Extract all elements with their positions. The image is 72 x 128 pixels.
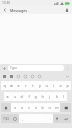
button[interactable]: Add attachment xyxy=(2,66,7,71)
staticText: n xyxy=(48,105,51,110)
button[interactable]: u xyxy=(43,81,50,90)
button[interactable]: ?123 xyxy=(1,114,11,123)
staticText: u xyxy=(45,83,48,88)
button[interactable]: g xyxy=(32,92,39,101)
button[interactable]: x xyxy=(18,103,25,112)
button[interactable]: Search xyxy=(37,74,42,79)
button[interactable]: Voice input xyxy=(53,114,61,123)
button[interactable]: c xyxy=(25,103,32,112)
staticText: q xyxy=(3,83,6,88)
button[interactable]: , xyxy=(19,114,25,123)
staticText: i xyxy=(53,83,54,88)
staticText: c xyxy=(28,105,30,110)
staticText: h xyxy=(41,94,44,99)
button[interactable]: Enter xyxy=(61,114,71,123)
button[interactable]: b xyxy=(39,103,46,112)
staticText: v xyxy=(35,105,37,110)
button[interactable]: Collapse xyxy=(65,74,70,79)
staticText: m xyxy=(55,105,59,110)
staticText: x xyxy=(21,105,23,110)
button[interactable]: Settings xyxy=(23,74,28,79)
button[interactable]: v xyxy=(32,103,39,112)
button[interactable]: q xyxy=(1,81,8,90)
staticText: s xyxy=(14,94,16,99)
button[interactable]: Back xyxy=(2,7,8,13)
button[interactable]: y xyxy=(36,81,43,90)
staticText: Type xyxy=(10,66,18,70)
button[interactable]: Emoji xyxy=(11,114,19,123)
button[interactable]: h xyxy=(39,92,46,101)
button[interactable]: o xyxy=(57,81,64,90)
staticText: 10:30 xyxy=(2,1,11,5)
staticText: k xyxy=(56,94,58,99)
button[interactable]: i xyxy=(50,81,57,90)
staticText: . xyxy=(50,116,51,121)
button[interactable]: f xyxy=(25,92,32,101)
staticText: t xyxy=(32,83,34,88)
staticText: w xyxy=(10,83,13,88)
button[interactable]: j xyxy=(46,92,53,101)
staticText: a xyxy=(6,94,9,99)
staticText: g xyxy=(34,94,37,99)
button[interactable]: z xyxy=(11,103,18,112)
staticText: j xyxy=(49,94,50,99)
button[interactable]: More options xyxy=(64,7,70,13)
button[interactable]: Backspace xyxy=(60,103,71,112)
staticText: o xyxy=(59,83,62,88)
button[interactable]: t xyxy=(29,81,36,90)
button[interactable]: . xyxy=(47,114,53,123)
button[interactable]: p xyxy=(64,81,71,90)
button[interactable]: k xyxy=(53,92,60,101)
staticText: f xyxy=(28,94,30,99)
staticText: y xyxy=(39,83,41,88)
button[interactable]: l xyxy=(60,92,67,101)
button[interactable]: e xyxy=(15,81,22,90)
button[interactable]: Send xyxy=(65,66,70,71)
button[interactable]: m xyxy=(53,103,60,112)
staticText: l xyxy=(63,94,64,99)
staticText: Messages xyxy=(10,8,27,13)
button[interactable]: Sticker xyxy=(9,74,14,79)
button[interactable]: w xyxy=(8,81,15,90)
staticText: e xyxy=(17,83,20,88)
button[interactable]: Type xyxy=(8,65,64,71)
staticText: d xyxy=(20,94,23,99)
button[interactable]: Theme xyxy=(30,74,35,79)
staticText: z xyxy=(14,105,16,110)
staticText: , xyxy=(22,116,23,121)
button[interactable]: n xyxy=(46,103,53,112)
button[interactable]: Shift xyxy=(1,103,11,112)
staticText: b xyxy=(41,105,44,110)
staticText: p xyxy=(66,83,69,88)
staticText: r xyxy=(25,83,27,88)
button[interactable]: Keyboard xyxy=(2,74,7,79)
button[interactable]: a xyxy=(4,92,11,101)
button[interactable]: Emoji xyxy=(16,74,21,79)
button[interactable]: d xyxy=(18,92,25,101)
staticText: ?123 xyxy=(3,117,9,121)
button[interactable]: s xyxy=(11,92,18,101)
button[interactable]: r xyxy=(22,81,29,90)
